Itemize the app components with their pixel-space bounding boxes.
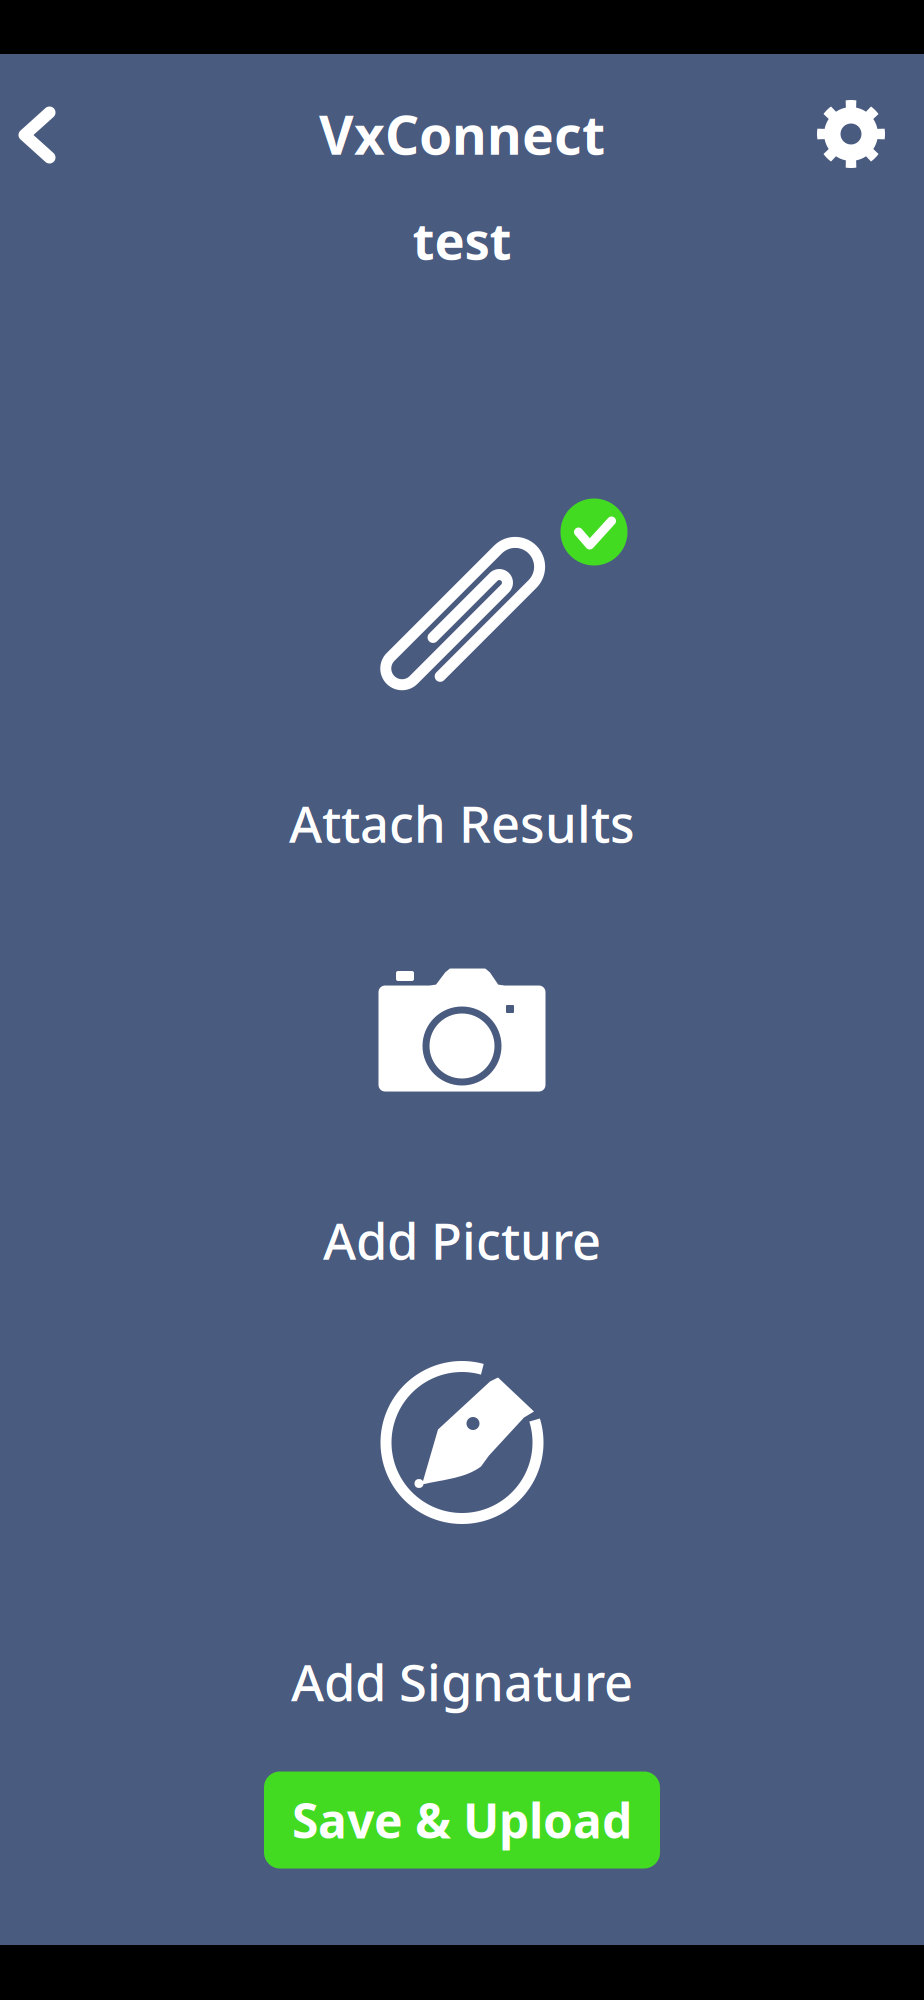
staticText: Add Picture <box>323 1206 601 1274</box>
button[interactable]: Attach Results <box>252 539 672 845</box>
button[interactable]: Back <box>0 78 79 191</box>
button[interactable]: Add Signature <box>252 1382 672 1703</box>
button[interactable]: Save & Upload <box>264 1771 660 1868</box>
staticText: VxConnect <box>319 99 605 169</box>
staticText: Add Signature <box>291 1648 633 1715</box>
staticText: Attach Results <box>289 789 635 857</box>
staticText: Save & Upload <box>292 1788 632 1852</box>
button[interactable]: Add Picture <box>252 1014 672 1262</box>
staticText: test <box>412 206 511 274</box>
button[interactable]: Settings <box>797 80 905 188</box>
